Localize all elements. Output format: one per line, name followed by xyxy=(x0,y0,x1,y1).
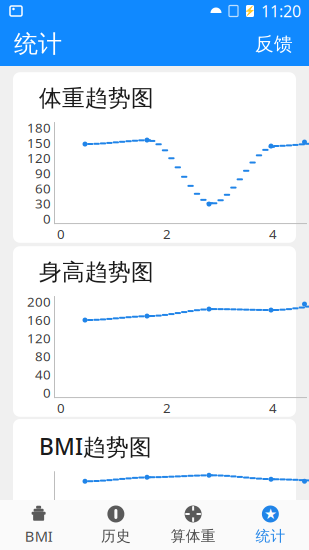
staticText: 120 xyxy=(27,149,51,167)
staticText: 180 xyxy=(27,119,51,136)
button[interactable]: BMI xyxy=(0,498,77,550)
button[interactable]: 统计 xyxy=(232,499,309,550)
staticText: 30 xyxy=(35,194,51,212)
staticText: ⚡ xyxy=(244,6,256,16)
staticText: 30 xyxy=(35,513,51,531)
staticText: 4 xyxy=(269,225,277,243)
staticText: 120 xyxy=(27,329,51,347)
staticText: 0 xyxy=(57,225,65,243)
staticText: BMI xyxy=(25,526,53,546)
staticText: 0 xyxy=(43,384,51,401)
staticText: 历史 xyxy=(101,527,131,545)
staticText: 90 xyxy=(35,164,51,182)
staticText: ★ xyxy=(264,506,277,522)
staticText: 60 xyxy=(35,179,51,197)
staticText: 4 xyxy=(269,399,277,417)
button[interactable]: 历史 xyxy=(77,499,154,550)
staticText: 11:20 xyxy=(261,0,301,22)
staticText: 80 xyxy=(35,347,51,365)
staticText: 算体重 xyxy=(171,527,216,545)
staticText: 0 xyxy=(57,399,65,417)
staticText: 2 xyxy=(163,225,171,243)
staticText: 2 xyxy=(163,399,171,417)
staticText: 40 xyxy=(35,365,51,383)
staticText: 统计 xyxy=(255,527,285,545)
staticText: 体重趋势图 xyxy=(39,84,154,112)
staticText: 150 xyxy=(27,134,51,152)
button[interactable]: 反馈 xyxy=(243,24,305,63)
button[interactable]: 算体重 xyxy=(154,499,232,550)
staticText: 身高趋势图 xyxy=(39,258,154,286)
staticText: BMI趋势图 xyxy=(39,431,152,461)
staticText: 反馈 xyxy=(255,32,293,55)
staticText: 160 xyxy=(27,311,51,329)
staticText: 统计 xyxy=(14,29,62,59)
staticText: 200 xyxy=(27,293,51,310)
staticText: 0 xyxy=(43,210,51,227)
